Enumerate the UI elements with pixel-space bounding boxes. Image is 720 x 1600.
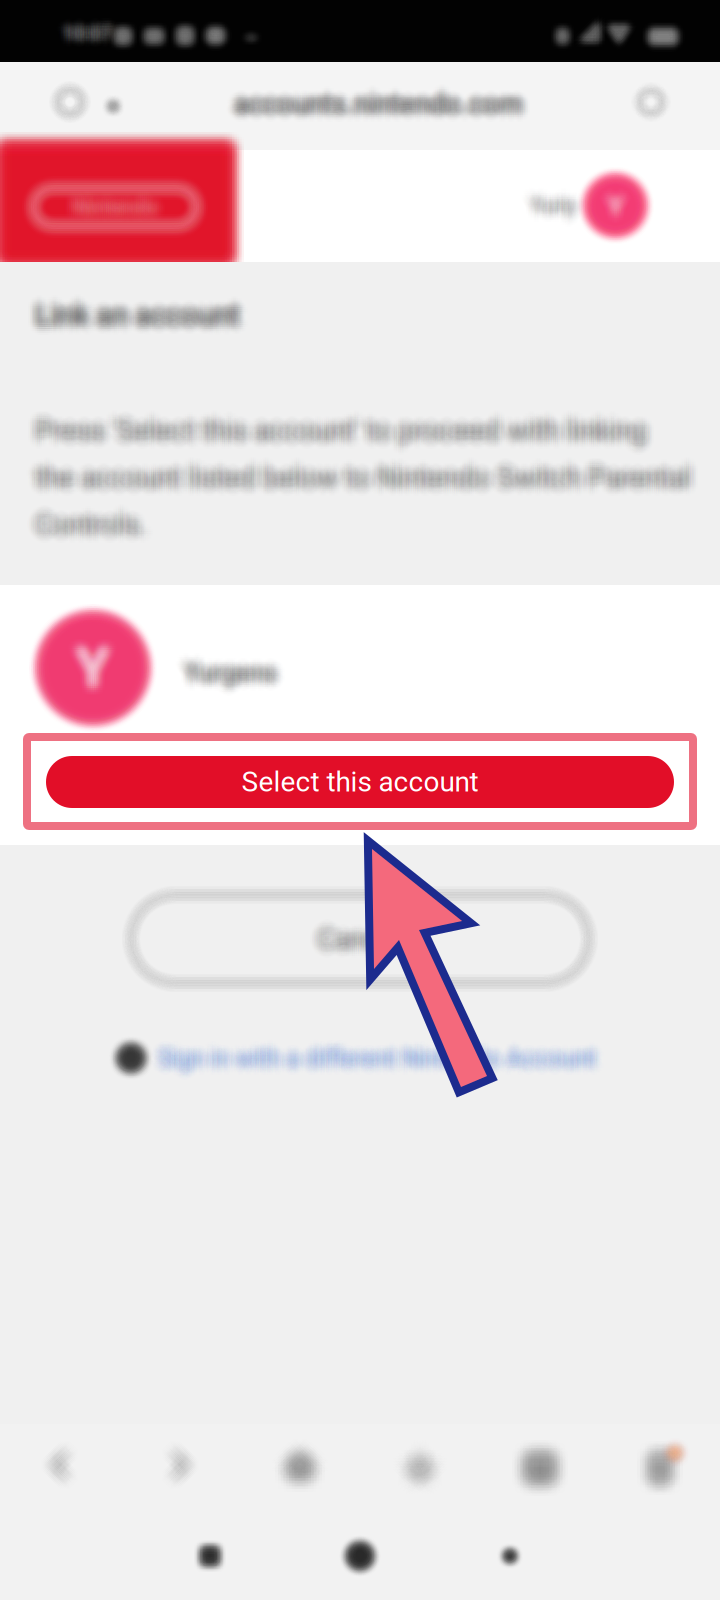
staticText: Y: [599, 191, 615, 223]
staticText: Y: [86, 629, 119, 692]
staticText: accounts.nintendo.com: [237, 88, 526, 120]
staticText: Cancel: [323, 923, 408, 955]
staticText: Cancel: [319, 913, 404, 946]
staticText: Nintendo: [80, 191, 166, 216]
staticText: Y: [607, 193, 623, 225]
staticText: the account listed below to Nintendo Swi…: [28, 466, 684, 499]
button[interactable]: Back: [22, 1428, 98, 1508]
staticText: accounts.nintendo.com: [232, 79, 521, 111]
staticText: Link an account: [33, 300, 238, 334]
staticText: Link an account: [44, 303, 249, 338]
staticText: 10:07: [61, 20, 110, 42]
staticText: Y: [84, 627, 117, 690]
staticText: Link an account: [39, 289, 244, 323]
staticText: Sign in with a different Nintendo Accoun…: [151, 1046, 589, 1074]
staticText: Controls.: [28, 515, 139, 548]
staticText: Cancel: [321, 932, 406, 965]
button[interactable]: Cancel: [120, 884, 600, 994]
button[interactable]: Home: [262, 1428, 338, 1508]
button[interactable]: Sign in with a different Nintendo Accoun…: [112, 1039, 596, 1077]
staticText: Press 'Select this account' to proceed w…: [40, 418, 652, 450]
button[interactable]: Tabs: [502, 1428, 578, 1508]
staticText: Yuriy: [534, 184, 580, 209]
staticText: Link an account: [44, 305, 249, 340]
staticText: Y: [602, 181, 618, 212]
staticText: Yurgens: [178, 667, 271, 697]
staticText: Link an account: [42, 292, 247, 327]
staticText: Yurgens: [175, 662, 268, 691]
staticText: 10:07: [66, 16, 115, 37]
staticText: Nintendo: [82, 187, 168, 212]
staticText: accounts.nintendo.com: [229, 97, 518, 129]
staticText: accounts.nintendo.com: [236, 90, 525, 122]
button[interactable]: Back: [455, 1512, 565, 1600]
button[interactable]: Nintendo home: [10, 159, 220, 255]
staticText: Sign in with a different Nintendo Accoun…: [158, 1040, 596, 1069]
staticText: Controls.: [44, 499, 155, 532]
staticText: Cancel: [319, 930, 404, 963]
staticText: 10:07: [61, 25, 110, 47]
staticText: Y: [78, 638, 111, 701]
staticText: Link an account: [44, 302, 249, 336]
staticText: accounts.nintendo.com: [236, 86, 525, 118]
button[interactable]: Forward: [142, 1428, 218, 1508]
staticText: Press 'Select this account' to proceed w…: [42, 423, 654, 456]
button[interactable]: Account menu: [530, 170, 651, 241]
staticText: Yurgens: [186, 665, 279, 695]
staticText: Controls.: [42, 510, 153, 543]
staticText: 10:07: [71, 20, 120, 42]
staticText: accounts.nintendo.com: [241, 93, 530, 125]
staticText: Sign in with a different Nintendo Accoun…: [163, 1040, 601, 1069]
staticText: Yurgens: [182, 649, 275, 678]
staticText: Controls.: [26, 517, 137, 550]
staticText: Yurgens: [177, 658, 270, 688]
staticText: Controls.: [44, 513, 155, 546]
staticText: Link an account: [33, 292, 238, 327]
button[interactable]: Recent apps: [155, 1512, 265, 1600]
button[interactable]: Reload page: [620, 71, 682, 133]
staticText: Yurgens: [177, 656, 270, 686]
staticText: the account listed below to Nintendo Swi…: [39, 466, 695, 499]
staticText: Y: [609, 188, 625, 219]
staticText: 10:07: [60, 25, 109, 47]
staticText: Nintendo: [70, 196, 156, 221]
staticText: Y: [76, 642, 109, 705]
staticText: accounts.nintendo.com: [243, 97, 532, 129]
staticText: Controls.: [31, 517, 142, 550]
staticText: Sign in with a different Nintendo Accoun…: [165, 1049, 603, 1077]
staticText: 10:07: [57, 20, 106, 42]
staticText: the account listed below to Nintendo Swi…: [40, 465, 696, 497]
staticText: Link an account: [39, 302, 244, 336]
button[interactable]: Site information: [39, 71, 101, 133]
button[interactable]: Select this account: [46, 756, 674, 808]
staticText: Press 'Select this account' to proceed w…: [37, 416, 649, 449]
staticText: Sign in with a different Nintendo Accoun…: [156, 1044, 594, 1072]
staticText: 10:07: [61, 19, 110, 41]
staticText: Yuriy: [532, 197, 578, 222]
staticText: Yuriy: [521, 198, 567, 223]
staticText: accounts.nintendo.com: [236, 83, 525, 115]
staticText: Link an account: [31, 294, 236, 329]
button[interactable]: Home: [305, 1512, 415, 1600]
staticText: 10:07: [63, 25, 112, 47]
button[interactable]: Menu: [622, 1428, 698, 1508]
staticText: Link an account: [37, 300, 242, 334]
staticText: Press 'Select this account' to proceed w…: [31, 405, 643, 438]
staticText: Yuriy: [524, 193, 570, 218]
staticText: 10:07: [66, 17, 115, 39]
staticText: Y: [613, 191, 629, 223]
staticText: 10:07: [58, 17, 107, 39]
staticText: the account listed below to Nintendo Swi…: [33, 457, 689, 490]
button[interactable]: Bookmarks: [382, 1428, 458, 1508]
staticText: Controls.: [37, 504, 148, 537]
staticText: Y: [614, 183, 630, 214]
staticText: Y: [67, 646, 100, 708]
staticText: Yuriy: [534, 186, 580, 211]
staticText: Link an account: [39, 298, 244, 332]
staticText: Controls.: [29, 504, 140, 537]
staticText: accounts.nintendo.com: [241, 90, 530, 122]
staticText: Nintendo: [82, 185, 168, 210]
staticText: Controls.: [44, 504, 155, 537]
staticText: Cancel: [316, 917, 401, 950]
staticText: Y: [602, 183, 618, 214]
